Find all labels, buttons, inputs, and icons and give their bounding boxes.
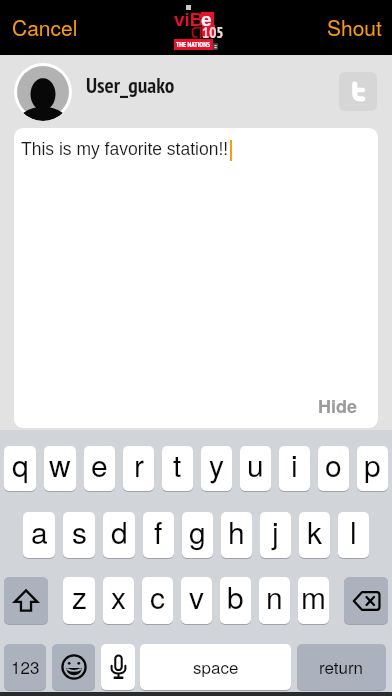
staticText: c: [150, 577, 165, 618]
button[interactable]: Dictate: [101, 644, 135, 690]
button[interactable]: s: [63, 512, 95, 558]
staticText: viB: [174, 9, 204, 30]
staticText: p: [364, 446, 381, 486]
button[interactable]: v: [181, 577, 212, 624]
staticText: m: [301, 577, 326, 618]
staticText: x: [111, 577, 126, 618]
button[interactable]: f: [143, 512, 174, 558]
button[interactable]: Cancel: [0, 3, 92, 53]
staticText: space: [193, 654, 239, 678]
button[interactable]: d: [103, 512, 135, 558]
staticText: Hide: [318, 393, 358, 419]
staticText: t: [173, 446, 182, 486]
button[interactable]: e: [84, 446, 115, 491]
staticText: l: [350, 512, 357, 553]
staticText: u: [247, 446, 264, 486]
button[interactable]: a: [23, 512, 55, 558]
button[interactable]: i: [279, 446, 310, 491]
staticText: e: [201, 9, 212, 30]
button[interactable]: k: [299, 512, 330, 558]
staticText: e: [91, 446, 108, 486]
staticText: d: [111, 512, 128, 553]
button[interactable]: c: [142, 577, 173, 624]
button[interactable]: Space: [140, 644, 291, 690]
button[interactable]: x: [103, 577, 134, 624]
button[interactable]: return: [297, 644, 386, 690]
staticText: v: [189, 577, 204, 618]
staticText: j: [272, 512, 279, 553]
staticText: User_guako: [86, 71, 175, 99]
button[interactable]: u: [240, 446, 271, 491]
staticText: 123: [11, 654, 40, 678]
button[interactable]: z: [63, 577, 95, 624]
button[interactable]: m: [298, 577, 329, 624]
staticText: h: [228, 512, 245, 553]
button[interactable]: h: [221, 512, 252, 558]
staticText: f: [154, 512, 163, 553]
staticText: i: [291, 446, 298, 486]
button[interactable]: Shout: [313, 3, 392, 53]
staticText: k: [307, 512, 322, 553]
staticText: g: [189, 512, 206, 553]
staticText: Cancel: [12, 12, 78, 42]
staticText: o: [325, 446, 342, 486]
button[interactable]: b: [220, 577, 251, 624]
button[interactable]: Backspace: [344, 577, 388, 624]
staticText: z: [72, 577, 87, 618]
button[interactable]: w: [44, 446, 76, 491]
button[interactable]: q: [4, 446, 36, 491]
staticText: q: [12, 446, 29, 486]
button[interactable]: t: [162, 446, 193, 491]
button[interactable]: Share on Twitter: [339, 72, 377, 111]
button[interactable]: l: [338, 512, 369, 558]
staticText: r: [134, 446, 144, 486]
button[interactable]: n: [259, 577, 290, 624]
button[interactable]: p: [357, 446, 388, 491]
staticText: y: [209, 446, 224, 486]
button[interactable]: o: [318, 446, 349, 491]
staticText: return: [319, 654, 364, 678]
button[interactable]: j: [260, 512, 291, 558]
button[interactable]: g: [182, 512, 213, 558]
staticText: THE NATIONS: [176, 40, 211, 49]
staticText: n: [266, 577, 283, 618]
staticText: s: [72, 512, 87, 553]
button[interactable]: r: [123, 446, 154, 491]
staticText: b: [227, 577, 244, 618]
staticText: This is my favorite station!!: [21, 139, 229, 159]
button[interactable]: Hide: [318, 393, 378, 428]
staticText: a: [31, 512, 48, 553]
staticText: CT: [191, 23, 205, 42]
button[interactable]: Emoji: [52, 644, 95, 690]
button[interactable]: 123: [4, 644, 46, 690]
button[interactable]: y: [201, 446, 232, 491]
staticText: Shout: [327, 12, 382, 42]
button[interactable]: Shift: [4, 577, 48, 624]
staticText: w: [49, 446, 71, 486]
staticText: 105: [202, 23, 224, 42]
